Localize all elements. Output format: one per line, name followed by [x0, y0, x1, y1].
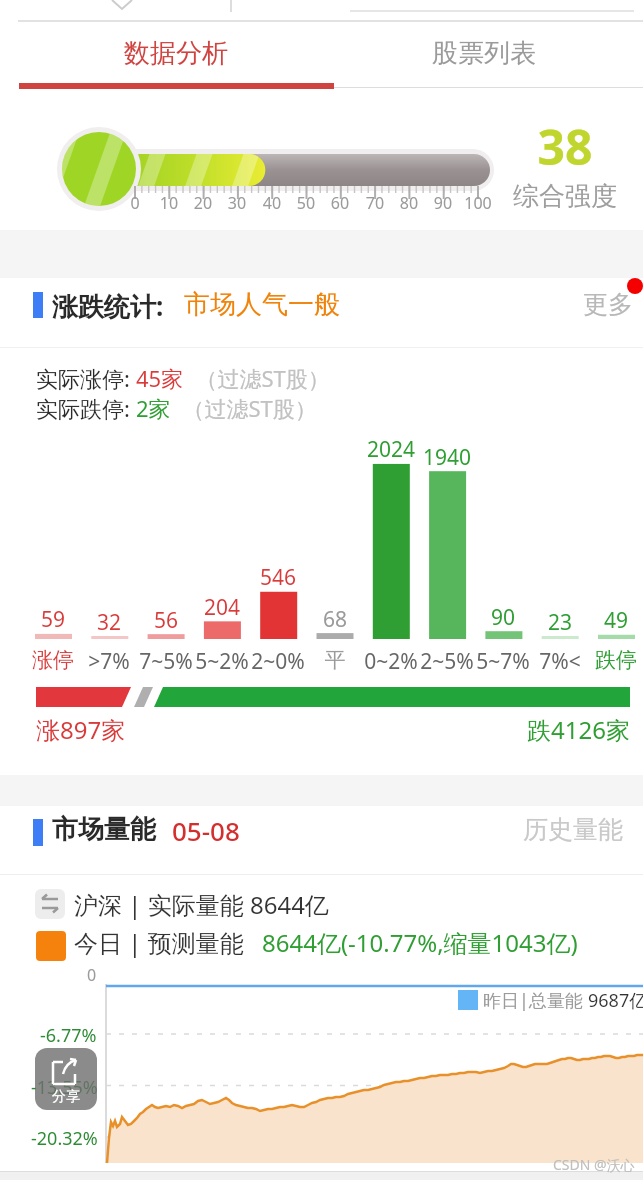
- staticText: -20.32%: [31, 1126, 98, 1151]
- staticText: 跌停: [583, 647, 643, 673]
- staticText: 昨日|总量能: [483, 988, 588, 1013]
- staticText: 23: [530, 608, 590, 637]
- staticText: 2家: [136, 393, 171, 423]
- staticText: 跌4126家: [330, 713, 630, 746]
- button[interactable]: 更多: [573, 283, 643, 323]
- staticText: 分享: [52, 1088, 80, 1106]
- staticText: 8644亿(-10.77%,缩量1043亿): [262, 926, 578, 959]
- staticText: 实际跌停:: [36, 393, 136, 423]
- staticText: 100: [456, 192, 500, 214]
- staticText: 60: [318, 192, 362, 214]
- staticText: >7%: [76, 647, 142, 676]
- staticText: 1940: [417, 443, 477, 472]
- staticText: 45家: [136, 363, 184, 393]
- staticText: 数据分析: [124, 37, 228, 70]
- staticText: 5~7%: [470, 647, 536, 676]
- staticText: 49: [586, 606, 643, 635]
- button[interactable]: 分享: [35, 1048, 97, 1110]
- staticText: 实际涨停:: [36, 363, 136, 393]
- staticText: 5~2%: [189, 647, 255, 676]
- staticText: 平: [302, 647, 368, 673]
- staticText: 市场量能: [52, 813, 156, 846]
- staticText: 0: [87, 964, 97, 986]
- staticText: （过滤ST股）: [184, 363, 330, 393]
- staticText: 涨停: [20, 647, 86, 673]
- button[interactable]: 历史量能: [515, 808, 643, 850]
- staticText: 70: [353, 192, 397, 214]
- staticText: 7%<: [527, 647, 593, 676]
- staticText: -6.77%: [40, 1023, 97, 1048]
- staticText: 0~2%: [358, 647, 424, 676]
- staticText: 更多: [583, 289, 633, 320]
- staticText: 7~5%: [133, 647, 199, 676]
- staticText: 32: [79, 608, 139, 637]
- staticText: 546: [248, 563, 308, 592]
- staticText: 59: [23, 605, 83, 634]
- staticText: 38: [522, 114, 608, 179]
- staticText: 0: [113, 192, 157, 214]
- staticText: 2024: [361, 435, 421, 464]
- staticText: 综合强度: [503, 180, 627, 213]
- staticText: 204: [192, 593, 252, 622]
- staticText: 10: [147, 192, 191, 214]
- staticText: 90: [473, 603, 533, 632]
- staticText: 9687亿: [588, 988, 643, 1013]
- staticText: CSDN @沃心: [553, 1155, 635, 1174]
- staticText: 56: [136, 606, 196, 635]
- button[interactable]: 股票列表: [324, 24, 643, 82]
- staticText: 涨跌统计:: [52, 288, 164, 324]
- staticText: 2~0%: [245, 647, 311, 676]
- staticText: 历史量能: [523, 814, 623, 845]
- staticText: 股票列表: [432, 37, 536, 70]
- staticText: 80: [387, 192, 431, 214]
- staticText: 40: [250, 192, 294, 214]
- staticText: 30: [215, 192, 259, 214]
- staticText: 沪深 | 实际量能 8644亿: [74, 888, 329, 921]
- staticText: 90: [421, 192, 465, 214]
- button[interactable]: 数据分析: [16, 24, 336, 82]
- staticText: -13.55%: [31, 1075, 98, 1100]
- staticText: 今日 | 预测量能: [74, 926, 244, 959]
- staticText: 20: [181, 192, 225, 214]
- staticText: 2~5%: [414, 647, 480, 676]
- staticText: 涨897家: [36, 713, 126, 746]
- staticText: 68: [305, 605, 365, 634]
- staticText: 50: [284, 192, 328, 214]
- staticText: （过滤ST股）: [171, 393, 317, 423]
- staticText: 05-08: [172, 813, 240, 848]
- staticText: 市场人气一般: [184, 288, 340, 321]
